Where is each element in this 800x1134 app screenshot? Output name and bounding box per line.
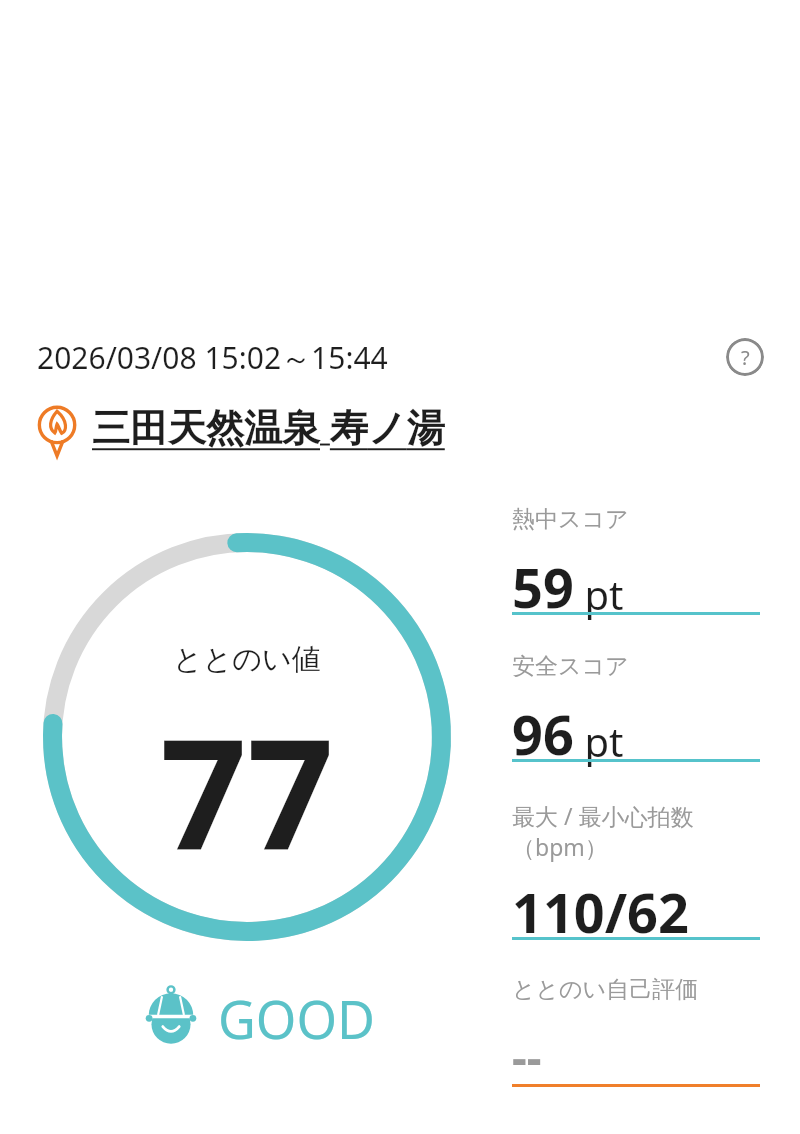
staticText: 110/62 bbox=[512, 875, 689, 949]
staticText: 最大 / 最小心拍数 bbox=[512, 800, 694, 831]
staticText: 2026/03/08 15:02～15:44 bbox=[37, 337, 388, 378]
staticText: 96 bbox=[512, 697, 574, 771]
staticText: -- bbox=[512, 1026, 542, 1089]
staticText: GOOD bbox=[218, 983, 376, 1054]
staticText: pt bbox=[574, 567, 624, 621]
staticText: 77 bbox=[160, 688, 334, 895]
staticText: ととのい値 bbox=[173, 641, 321, 678]
staticText: 熱中スコア bbox=[512, 505, 629, 534]
button[interactable]: 三田天然温泉 寿ノ湯 bbox=[30, 398, 445, 454]
staticText: 59 bbox=[512, 550, 574, 624]
button[interactable]: GOOD bbox=[140, 982, 376, 1054]
button[interactable]: Help bbox=[726, 338, 764, 376]
staticText: 三田天然温泉 寿ノ湯 bbox=[92, 400, 445, 452]
staticText: （bpm） bbox=[512, 831, 608, 862]
staticText: pt bbox=[574, 714, 624, 768]
staticText: ととのい自己評価 bbox=[512, 975, 699, 1004]
staticText: ? bbox=[741, 344, 750, 371]
staticText: 安全スコア bbox=[512, 652, 629, 681]
